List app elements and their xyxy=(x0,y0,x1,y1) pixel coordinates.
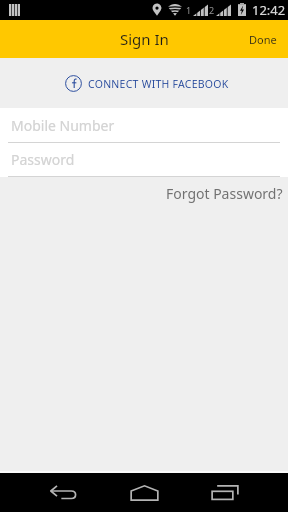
button[interactable]: Recent apps xyxy=(177,473,272,512)
staticText: Mobile Number xyxy=(11,116,115,135)
button[interactable]: Forgot Password? xyxy=(156,178,288,209)
staticText: 12:42 xyxy=(252,1,286,19)
staticText: 2 xyxy=(209,4,215,16)
staticText: Sign In xyxy=(120,29,169,49)
button[interactable]: Back xyxy=(16,473,111,512)
staticText: Forgot Password? xyxy=(166,184,283,203)
staticText: Done xyxy=(249,32,277,47)
button[interactable]: Password xyxy=(0,143,288,176)
button[interactable]: CONNECT WITH FACEBOOK xyxy=(59,69,235,98)
staticText: Password xyxy=(11,150,75,169)
button[interactable]: Home xyxy=(111,473,177,512)
staticText: CONNECT WITH FACEBOOK xyxy=(88,77,229,91)
button[interactable]: Mobile Number xyxy=(0,108,288,142)
staticText: 1 xyxy=(186,4,192,16)
button[interactable]: Done xyxy=(238,23,288,56)
